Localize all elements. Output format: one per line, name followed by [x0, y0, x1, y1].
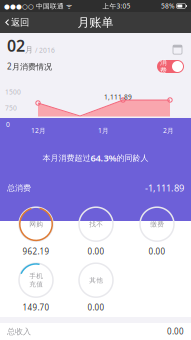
staticText: 750	[5, 103, 17, 112]
staticText: 64.3%	[90, 152, 116, 164]
button[interactable]: 网购	[12, 206, 60, 258]
staticText: -1,111.89	[145, 182, 184, 194]
staticText: 02	[7, 35, 25, 56]
staticText: 0.00	[148, 246, 165, 257]
staticText: 月账单	[77, 15, 113, 30]
staticText: 的同龄人	[116, 153, 148, 163]
staticText: 1500	[5, 87, 21, 96]
staticText: 消费	[160, 58, 167, 75]
staticText: 找不	[89, 220, 103, 228]
button[interactable]: 找不	[72, 206, 120, 258]
staticText: 总消费	[7, 183, 31, 193]
staticText: 0	[6, 120, 10, 129]
staticText: 0.00	[167, 326, 184, 337]
staticText: 149.70	[22, 302, 49, 313]
staticText: 2月	[163, 126, 174, 135]
staticText: ●●●○○ 中国联通 ᯤ	[4, 2, 72, 10]
button[interactable]: 缴费	[133, 206, 181, 258]
button[interactable]: 其他	[72, 262, 120, 314]
staticText: 12月	[31, 126, 46, 135]
button[interactable]: Pick month	[171, 43, 184, 56]
staticText: 总收入	[7, 327, 31, 336]
staticText: 上午3:05	[102, 2, 130, 10]
staticText: 月	[25, 45, 33, 55]
button[interactable]: 返回	[0, 12, 34, 33]
staticText: 962.19	[22, 246, 49, 257]
button[interactable]: 消费	[157, 60, 184, 73]
staticText: / 2016	[33, 46, 55, 55]
staticText: 返回	[11, 17, 29, 28]
staticText: 58%	[161, 2, 175, 10]
staticText: 缴费	[150, 220, 164, 228]
staticText: 1,111.89	[104, 92, 132, 101]
staticText: 0.00	[87, 302, 104, 313]
button[interactable]: 手机 充值	[12, 262, 60, 314]
staticText: 网购	[29, 220, 43, 228]
staticText: 本月消费超过	[42, 153, 90, 163]
staticText: 其他	[89, 276, 103, 284]
staticText: 2月消费情况	[7, 61, 52, 72]
staticText: 手机 充值	[29, 272, 43, 288]
staticText: 0.00	[87, 246, 104, 257]
staticText: 1月	[98, 126, 109, 135]
